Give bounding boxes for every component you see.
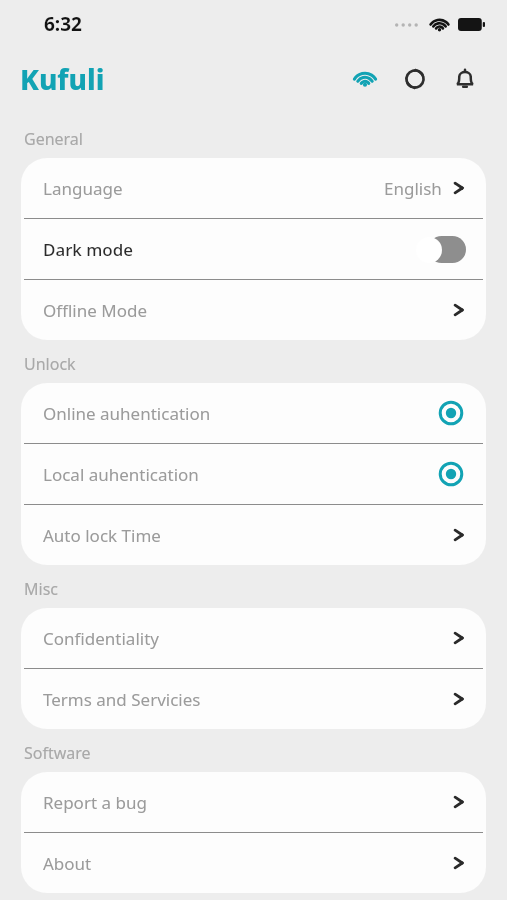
staticText: Local auhentication [43, 463, 199, 486]
staticText: Report a bug [43, 791, 147, 814]
staticText: Auto lock Time [43, 524, 161, 547]
button[interactable]: Sync [393, 57, 437, 101]
button[interactable]: Offline Mode [21, 280, 486, 340]
staticText: Dark mode [43, 238, 134, 261]
button[interactable]: About [21, 833, 486, 893]
staticText: Terms and Servicies [43, 688, 201, 711]
staticText: Software [24, 742, 91, 764]
button[interactable]: Language [21, 158, 486, 218]
staticText: Confidentiality [43, 627, 159, 650]
button[interactable]: Confidentiality [21, 608, 486, 668]
staticText: Misc [24, 578, 58, 600]
button[interactable]: Auto lock Time [21, 505, 486, 565]
button[interactable]: Dark mode [21, 219, 486, 279]
button[interactable]: Selected option [436, 459, 466, 489]
button[interactable]: Online auhentication [21, 383, 486, 443]
button[interactable]: Local auhentication [21, 444, 486, 504]
staticText: 6:32 [44, 11, 82, 37]
staticText: English [384, 177, 442, 200]
staticText: Offline Mode [43, 299, 148, 322]
button[interactable]: Terms and Servicies [21, 669, 486, 729]
button[interactable]: Dark mode toggle [416, 236, 466, 263]
button[interactable]: Notifications [443, 57, 487, 101]
staticText: Language [43, 177, 123, 200]
staticText: General [24, 128, 83, 150]
staticText: Online auhentication [43, 402, 211, 425]
button[interactable]: Report a bug [21, 772, 486, 832]
staticText: About [43, 852, 92, 875]
staticText: Unlock [24, 353, 76, 375]
button[interactable]: Connection status [343, 57, 387, 101]
button[interactable]: Selected option [436, 398, 466, 428]
staticText: Kufuli [20, 60, 105, 98]
